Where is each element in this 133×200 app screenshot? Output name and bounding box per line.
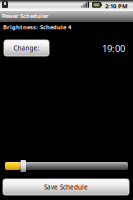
staticText: Power Scheduler bbox=[2, 12, 49, 20]
button[interactable]: Save Schedule bbox=[3, 179, 129, 195]
staticText: Save Schedule bbox=[44, 183, 88, 191]
staticText: Brightness: Schedule 4 bbox=[3, 23, 71, 31]
staticText: 2:10 PM bbox=[105, 2, 128, 10]
button[interactable]: Change: bbox=[4, 40, 49, 56]
staticText: Change: bbox=[13, 44, 39, 52]
staticText: 19:00 bbox=[102, 42, 125, 55]
